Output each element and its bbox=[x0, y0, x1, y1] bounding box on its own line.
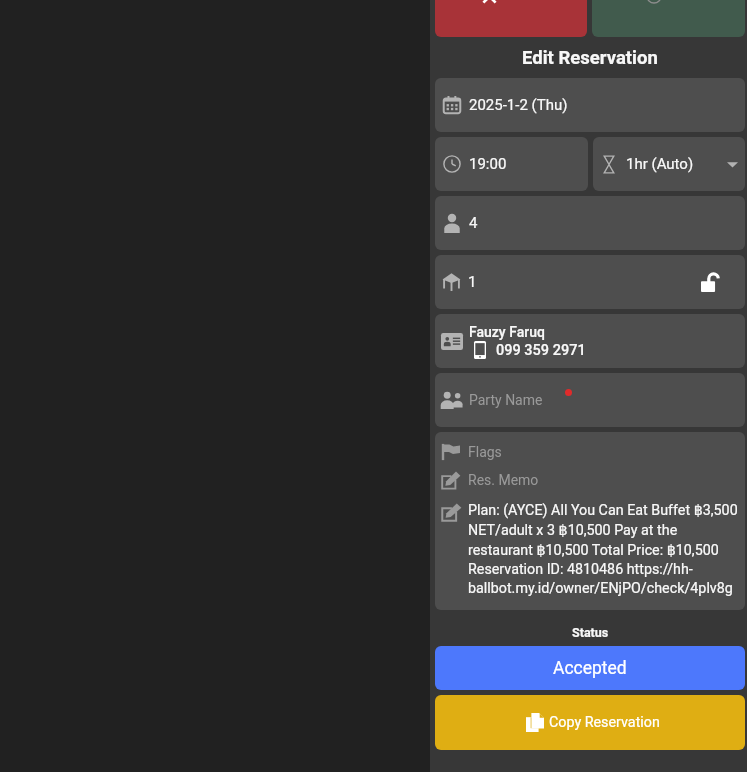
button[interactable]: 4 bbox=[435, 196, 745, 250]
staticText: 1 bbox=[468, 273, 477, 291]
button[interactable]: Plan: (AYCE) All You Can Eat Buffet ฿3,5… bbox=[441, 502, 741, 597]
staticText: 4 bbox=[469, 214, 478, 232]
button[interactable]: Party Name bbox=[435, 373, 745, 427]
staticText: 2025-1-2 (Thu) bbox=[469, 96, 568, 114]
button[interactable]: Flags bbox=[441, 438, 741, 466]
staticText: Plan: (AYCE) All You Can Eat Buffet ฿3,5… bbox=[468, 502, 741, 597]
staticText: Party Name bbox=[469, 392, 543, 408]
staticText: 099 359 2971 bbox=[496, 342, 586, 359]
button[interactable]: Decline reservation bbox=[435, 0, 587, 37]
button[interactable]: 19:00 bbox=[435, 137, 588, 191]
staticText: Res. Memo bbox=[468, 472, 539, 488]
button[interactable]: 1hr (Auto) bbox=[593, 137, 745, 191]
staticText: Edit Reservation bbox=[522, 47, 658, 69]
staticText: 19:00 bbox=[469, 155, 507, 173]
staticText: Copy Reservation bbox=[549, 714, 660, 731]
button[interactable]: 1 bbox=[435, 255, 745, 309]
staticText: Accepted bbox=[553, 658, 627, 679]
staticText: Flags bbox=[468, 444, 502, 460]
button[interactable]: Fauzy Faruq bbox=[435, 314, 745, 368]
button[interactable]: Unlock table bbox=[700, 272, 720, 292]
button[interactable]: Res. Memo bbox=[441, 466, 741, 494]
button[interactable]: 2025-1-2 (Thu) bbox=[435, 78, 745, 132]
button[interactable]: Accepted bbox=[435, 646, 745, 690]
staticText: Fauzy Faruq bbox=[469, 324, 545, 340]
button[interactable]: Copy Reservation bbox=[435, 695, 745, 750]
button[interactable]: Accept reservation bbox=[592, 0, 745, 37]
staticText: Status bbox=[572, 625, 609, 640]
staticText: 1hr (Auto) bbox=[626, 155, 694, 173]
